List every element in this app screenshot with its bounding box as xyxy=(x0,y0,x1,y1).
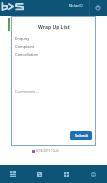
button[interactable]: Enquiry xyxy=(15,34,93,42)
staticText: 6/18/2019 10:22 xyxy=(36,149,59,153)
staticText: Cancellation xyxy=(15,52,39,57)
button[interactable]: Submit xyxy=(70,131,92,140)
button[interactable]: Reports xyxy=(53,165,80,183)
button[interactable]: Dashboard xyxy=(0,165,26,183)
button[interactable]: Complaint xyxy=(15,42,93,50)
staticText: Comments... xyxy=(15,89,39,94)
button[interactable]: Calls xyxy=(26,165,53,183)
button[interactable]: Cancellation xyxy=(15,50,93,58)
staticText: Submit xyxy=(75,133,88,138)
staticText: Wrap Up List xyxy=(38,24,70,31)
staticText: Michael O xyxy=(69,4,83,8)
staticText: Complaint xyxy=(15,44,35,49)
button[interactable]: Power / sign out xyxy=(92,2,104,14)
staticText: Enquiry xyxy=(15,36,30,41)
button[interactable]: Web xyxy=(80,165,107,183)
